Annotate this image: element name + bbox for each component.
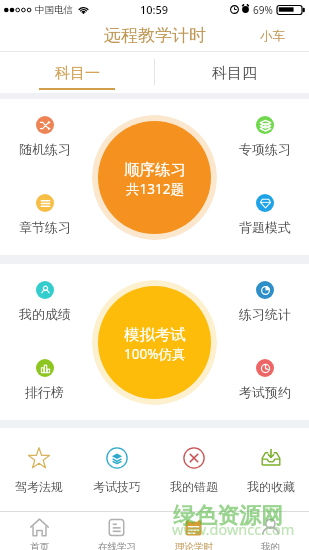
staticText: 专项练习 — [239, 141, 291, 157]
staticText: 科目一 — [55, 64, 100, 83]
staticText: 章节练习 — [19, 219, 71, 235]
staticText: www.downcc.com — [172, 519, 295, 539]
staticText: 69% — [253, 3, 273, 17]
staticText: 练习统计 — [239, 306, 291, 322]
button[interactable]: 练习统计 — [235, 281, 294, 322]
button[interactable]: 模拟考试 — [92, 280, 217, 405]
staticText: 我的错题 — [170, 479, 218, 494]
staticText: 绿色资源网 — [173, 502, 283, 530]
button[interactable]: 科目一 — [0, 52, 154, 93]
button[interactable]: 驾考法规 — [0, 447, 78, 494]
staticText: 在线学习 — [98, 541, 136, 550]
staticText: 共1312题 — [126, 180, 184, 198]
button[interactable]: 考试预约 — [235, 359, 294, 400]
staticText: 10:59 — [140, 2, 169, 17]
button[interactable]: 理论学时 — [155, 512, 232, 550]
staticText: 我的 — [261, 541, 280, 550]
staticText: 考试预约 — [239, 384, 291, 400]
staticText: 科目四 — [212, 64, 257, 83]
staticText: 随机练习 — [19, 141, 71, 157]
button[interactable]: 首页 — [0, 512, 78, 550]
staticText: 考试技巧 — [93, 479, 141, 494]
button[interactable]: 我的收藏 — [232, 447, 309, 494]
staticText: 100%仿真 — [124, 345, 186, 363]
staticText: 排行榜 — [25, 384, 64, 400]
button[interactable]: 顺序练习 — [92, 115, 217, 240]
button[interactable]: 考试技巧 — [78, 447, 155, 494]
button[interactable]: 科目四 — [154, 52, 309, 93]
button[interactable]: 专项练习 — [235, 116, 294, 157]
staticText: 我的收藏 — [247, 479, 295, 494]
button[interactable]: 章节练习 — [15, 194, 74, 235]
staticText: 小车 — [260, 28, 285, 44]
button[interactable]: 小车 — [242, 22, 309, 50]
button[interactable]: 随机练习 — [15, 116, 74, 157]
staticText: 顺序练习 — [124, 160, 186, 180]
staticText: 驾考法规 — [15, 479, 63, 494]
staticText: 我的成绩 — [19, 306, 71, 322]
button[interactable]: 背题模式 — [235, 194, 294, 235]
staticText: 远程教学计时 — [104, 25, 206, 46]
staticText: 中国电信 — [35, 4, 73, 16]
button[interactable]: 排行榜 — [15, 359, 74, 400]
button[interactable]: 我的错题 — [155, 447, 232, 494]
button[interactable]: 我的成绩 — [15, 281, 74, 322]
staticText: 模拟考试 — [124, 325, 186, 345]
staticText: 首页 — [30, 541, 49, 550]
button[interactable]: 我的 — [232, 512, 309, 550]
button[interactable]: 在线学习 — [78, 512, 155, 550]
staticText: 背题模式 — [239, 219, 291, 235]
staticText: 理论学时 — [175, 541, 213, 550]
